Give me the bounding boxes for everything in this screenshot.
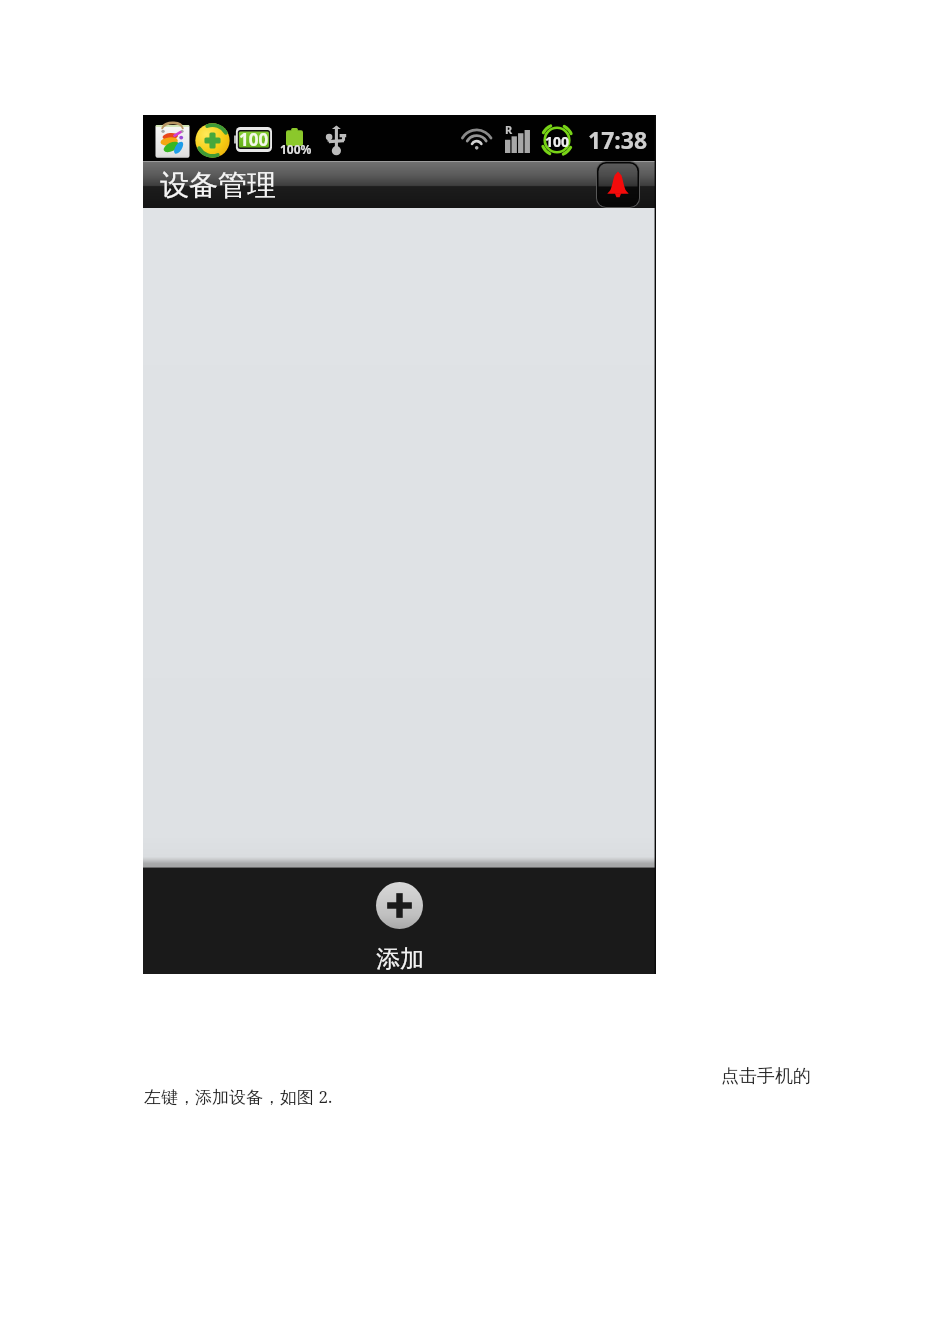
staticText: 左键，添加设备，如图 2.	[144, 1085, 333, 1108]
staticText: 100%	[280, 141, 312, 157]
button[interactable]: Alarm	[596, 161, 640, 208]
staticText: 100	[239, 128, 269, 151]
staticText: 添加	[376, 944, 424, 970]
button[interactable]: 添加	[143, 868, 656, 974]
staticText: 17:38	[588, 124, 648, 155]
staticText: 100	[545, 132, 570, 151]
staticText: 点击手机的	[721, 1065, 811, 1088]
staticText: 设备管理	[160, 167, 276, 204]
staticText: R	[505, 122, 513, 137]
